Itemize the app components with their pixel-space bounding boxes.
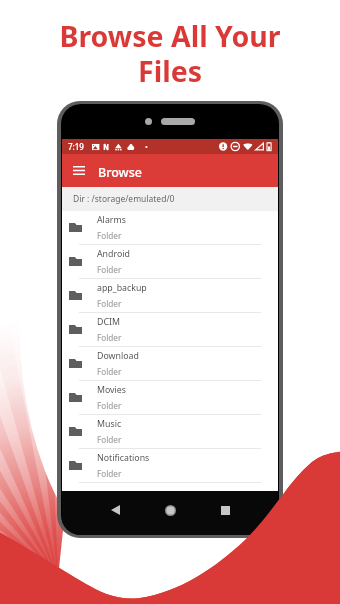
staticText: Folder: [97, 400, 122, 411]
button[interactable]: Movies: [62, 381, 278, 415]
staticText: Android: [97, 248, 130, 260]
staticText: Folder: [97, 230, 122, 241]
staticText: Folder: [97, 264, 122, 275]
button[interactable]: Notifications: [62, 449, 278, 483]
staticText: Browse All Your Files: [59, 17, 281, 90]
staticText: DCIM: [97, 316, 120, 328]
staticText: app_backup: [97, 282, 147, 294]
button[interactable]: Music: [62, 415, 278, 449]
button[interactable]: Download: [62, 347, 278, 381]
button[interactable]: Alarms: [62, 211, 278, 245]
staticText: Browse: [98, 164, 142, 181]
staticText: Folder: [97, 468, 122, 479]
staticText: Folder: [97, 366, 122, 377]
staticText: Folder: [97, 332, 122, 343]
staticText: 7:19: [68, 141, 84, 152]
button[interactable]: DCIM: [62, 313, 278, 347]
staticText: Dir : /storage/emulated/0: [73, 193, 175, 205]
button[interactable]: Recents: [213, 498, 237, 522]
button[interactable]: Back: [103, 498, 127, 522]
staticText: Folder: [97, 434, 122, 445]
button[interactable]: Home: [158, 498, 182, 522]
staticText: Movies: [97, 384, 127, 396]
button[interactable]: app_backup: [62, 279, 278, 313]
button[interactable]: Android: [62, 245, 278, 279]
staticText: Alarms: [97, 214, 126, 226]
staticText: Folder: [97, 298, 122, 309]
staticText: Notifications: [97, 452, 150, 464]
staticText: Music: [97, 418, 122, 430]
button[interactable]: Menu: [69, 161, 88, 180]
staticText: Download: [97, 350, 139, 362]
